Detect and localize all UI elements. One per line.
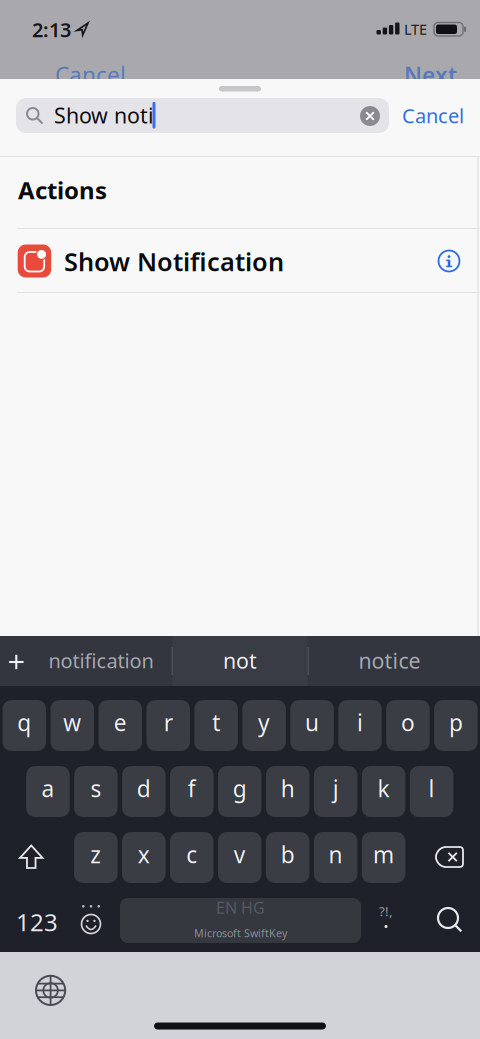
staticText: n — [329, 839, 343, 869]
button[interactable]: k — [362, 766, 405, 817]
staticText: not — [223, 646, 257, 675]
button[interactable]: Show Notification — [0, 228, 480, 292]
button[interactable]: n — [314, 832, 357, 883]
button[interactable]: g — [218, 766, 261, 817]
staticText: u — [305, 707, 319, 737]
button[interactable]: notification — [36, 649, 166, 672]
staticText: h — [281, 773, 295, 803]
button[interactable]: Cancel — [55, 63, 145, 87]
button[interactable]: t — [194, 700, 238, 751]
button[interactable]: b — [266, 832, 309, 883]
button[interactable]: j — [314, 766, 357, 817]
staticText: Cancel — [55, 60, 126, 90]
staticText: o — [401, 707, 415, 737]
button[interactable]: x — [122, 832, 166, 883]
staticText: Show Notification — [64, 245, 284, 278]
staticText: l — [429, 773, 435, 803]
button[interactable]: Shift — [20, 845, 42, 868]
staticText: a — [41, 773, 54, 803]
button[interactable]: o — [386, 700, 430, 751]
button[interactable]: u — [290, 700, 334, 751]
button[interactable]: Search — [424, 896, 472, 940]
button[interactable]: w — [51, 700, 94, 751]
button[interactable]: Emoji — [69, 902, 113, 946]
button[interactable]: e — [98, 700, 142, 751]
button[interactable]: z — [74, 832, 118, 883]
button[interactable]: l — [410, 766, 453, 817]
button[interactable]: i — [338, 700, 382, 751]
staticText: i — [357, 707, 363, 737]
staticText: Show noti — [54, 101, 154, 129]
button[interactable]: Add word — [9, 655, 23, 669]
staticText: k — [378, 773, 390, 803]
staticText: 123 — [16, 906, 58, 938]
staticText: d — [137, 773, 151, 803]
button[interactable]: Clear search text — [360, 106, 380, 126]
staticText: notice — [358, 646, 420, 675]
button[interactable]: Show Notification details — [438, 250, 460, 272]
staticText: 2:13 — [32, 16, 71, 43]
staticText: Cancel — [402, 102, 464, 129]
button[interactable]: Punctuation — [371, 903, 401, 929]
button[interactable]: Delete — [436, 847, 463, 867]
button[interactable]: c — [170, 832, 213, 883]
staticText: j — [333, 773, 339, 803]
button[interactable]: d — [122, 766, 166, 817]
staticText: b — [281, 839, 295, 869]
button[interactable]: r — [146, 700, 190, 751]
button[interactable]: Next — [404, 63, 480, 87]
staticText: x — [138, 839, 150, 869]
staticText: q — [17, 707, 31, 737]
staticText: r — [164, 707, 173, 737]
staticText: Next — [404, 60, 457, 90]
staticText: Actions — [18, 174, 107, 206]
button[interactable]: Cancel — [402, 103, 480, 127]
staticText: EN HG — [216, 897, 265, 918]
button[interactable]: not — [172, 649, 307, 672]
staticText: w — [63, 707, 81, 737]
staticText: Microsoft SwiftKey — [194, 926, 287, 940]
staticText: p — [449, 707, 463, 737]
staticText: y — [258, 707, 270, 737]
button[interactable]: Space — [120, 898, 361, 943]
staticText: s — [90, 773, 101, 803]
staticText: notification — [48, 647, 153, 674]
button[interactable]: p — [434, 700, 478, 751]
staticText: e — [114, 707, 127, 737]
button[interactable]: notice — [322, 649, 457, 672]
button[interactable]: a — [26, 766, 70, 817]
staticText: f — [188, 773, 196, 803]
staticText: t — [212, 707, 220, 737]
staticText: c — [186, 839, 197, 869]
staticText: z — [90, 839, 101, 869]
button[interactable]: h — [266, 766, 309, 817]
button[interactable]: y — [242, 700, 286, 751]
button[interactable]: v — [218, 832, 261, 883]
button[interactable]: s — [74, 766, 118, 817]
staticText: g — [233, 773, 247, 803]
staticText: m — [373, 839, 394, 869]
button[interactable]: f — [170, 766, 214, 817]
staticText: ?!, — [379, 902, 393, 920]
staticText: LTE — [404, 19, 427, 39]
button[interactable]: Numbers — [7, 910, 67, 934]
button[interactable]: Next keyboard — [27, 966, 75, 1014]
button[interactable]: q — [3, 700, 46, 751]
button[interactable]: m — [362, 832, 405, 883]
staticText: v — [234, 839, 246, 869]
